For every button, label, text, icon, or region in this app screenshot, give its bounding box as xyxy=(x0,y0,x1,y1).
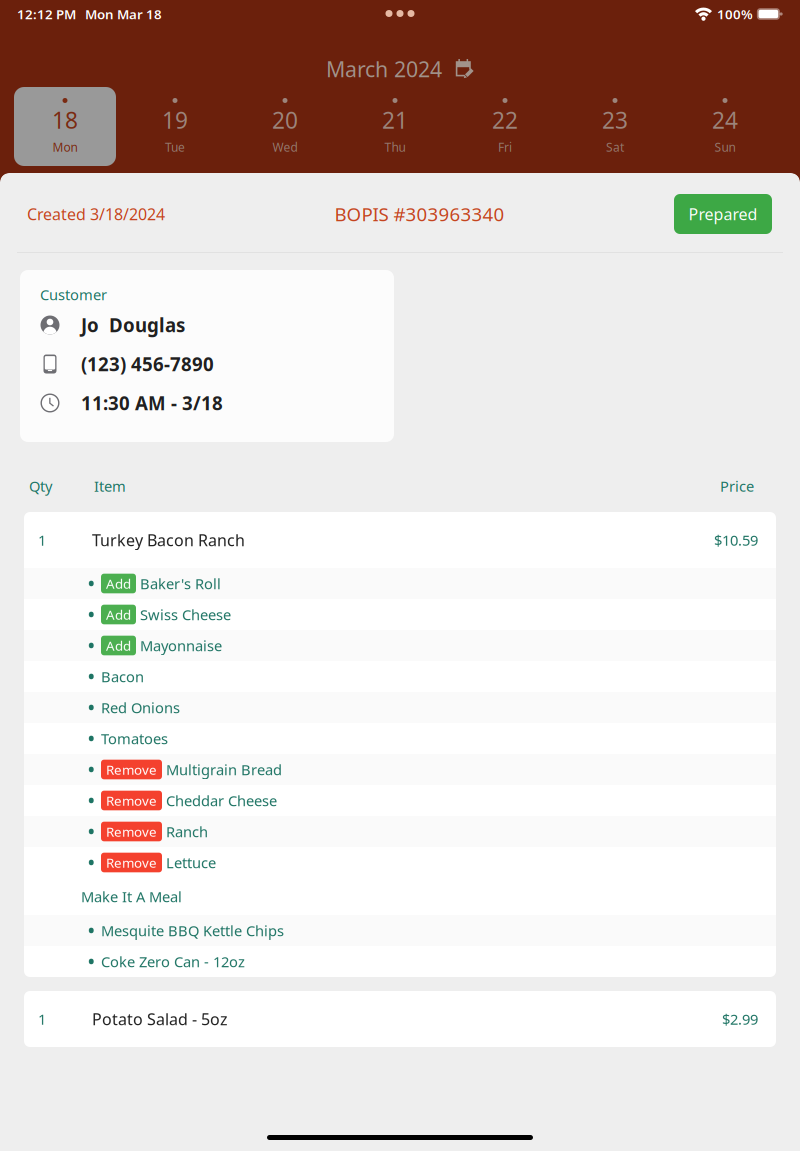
staticText: Created 3/18/2024 xyxy=(27,203,165,225)
staticText: Jo Douglas xyxy=(81,313,185,337)
staticText: 23 xyxy=(602,105,628,135)
staticText: Sat xyxy=(606,139,624,155)
staticText: 19 xyxy=(162,105,188,135)
staticText: Swiss Cheese xyxy=(140,605,231,624)
staticText: 23 xyxy=(602,105,628,135)
staticText: Item xyxy=(94,476,126,496)
button[interactable]: Prepared xyxy=(674,194,772,234)
staticText: Price xyxy=(720,476,754,496)
staticText: Mon Mar 18 xyxy=(85,5,162,23)
staticText: 24 xyxy=(712,105,738,135)
staticText: 11:30 AM - 3/18 xyxy=(81,391,223,415)
staticText: 22 xyxy=(492,105,518,135)
staticText: 1 xyxy=(38,530,46,550)
staticText: Wed xyxy=(272,139,297,155)
staticText: 1 xyxy=(38,1009,46,1029)
staticText: Remove xyxy=(106,792,157,809)
staticText: Remove xyxy=(106,761,157,778)
staticText: Add xyxy=(106,637,131,654)
staticText: Mon xyxy=(52,139,77,155)
staticText: Thu xyxy=(384,139,405,155)
staticText: Multigrain Bread xyxy=(166,760,282,779)
staticText: • xyxy=(88,634,95,657)
button[interactable]: 22 xyxy=(454,87,564,166)
button[interactable]: 20 xyxy=(234,87,344,166)
button[interactable]: 23 xyxy=(564,87,674,166)
staticText: 20 xyxy=(272,105,298,135)
staticText: March 2024 xyxy=(326,55,442,83)
staticText: 18 xyxy=(52,105,78,135)
button[interactable]: 21 xyxy=(344,87,454,166)
button[interactable]: 23 xyxy=(564,87,674,166)
button[interactable]: 19 xyxy=(124,87,234,166)
staticText: • xyxy=(88,851,95,874)
staticText: 19 xyxy=(162,105,188,135)
button[interactable]: 19 xyxy=(124,87,234,166)
staticText: 100% xyxy=(717,5,753,23)
button[interactable]: 24 xyxy=(674,87,784,166)
staticText: Red Onions xyxy=(101,698,180,717)
staticText: Coke Zero Can - 12oz xyxy=(101,952,245,971)
button[interactable]: 24 xyxy=(674,87,784,166)
staticText: Tue xyxy=(165,139,185,155)
staticText: Ranch xyxy=(166,822,208,841)
staticText: 24 xyxy=(712,105,738,135)
button[interactable]: 20 xyxy=(234,87,344,166)
staticText: Tomatoes xyxy=(101,729,168,748)
staticText: Turkey Bacon Ranch xyxy=(92,529,245,551)
staticText: Mesquite BBQ Kettle Chips xyxy=(101,921,284,940)
staticText: Tue xyxy=(165,139,185,155)
staticText: Potato Salad - 5oz xyxy=(92,1008,228,1030)
staticText: • xyxy=(88,919,95,942)
button[interactable]: March 2024 xyxy=(326,57,474,81)
staticText: Mon xyxy=(52,139,77,155)
staticText: Thu xyxy=(384,139,405,155)
staticText: Lettuce xyxy=(166,853,216,872)
staticText: Qty xyxy=(29,476,52,496)
staticText: Prepared xyxy=(688,203,757,225)
button[interactable]: 18 xyxy=(14,87,124,166)
staticText: Bacon xyxy=(101,667,144,686)
staticText: (123) 456-7890 xyxy=(81,352,214,376)
staticText: $2.99 xyxy=(722,1009,758,1029)
staticText: Make It A Meal xyxy=(81,887,182,906)
staticText: 12:12 PM xyxy=(17,5,76,23)
staticText: Wed xyxy=(272,139,297,155)
staticText: Sun xyxy=(714,139,735,155)
staticText: Baker's Roll xyxy=(140,574,221,593)
staticText: 20 xyxy=(272,105,298,135)
button[interactable]: 22 xyxy=(454,87,564,166)
staticText: $10.59 xyxy=(714,530,758,550)
staticText: • xyxy=(88,696,95,719)
staticText: • xyxy=(88,950,95,973)
staticText: 22 xyxy=(492,105,518,135)
staticText: Sun xyxy=(714,139,735,155)
staticText: Fri xyxy=(498,139,512,155)
staticText: 21 xyxy=(382,105,408,135)
staticText: • xyxy=(88,820,95,843)
button[interactable]: March 2024 xyxy=(326,57,474,81)
staticText: Mayonnaise xyxy=(140,636,222,655)
staticText: Sat xyxy=(606,139,624,155)
button[interactable]: 18 xyxy=(14,87,124,166)
staticText: March 2024 xyxy=(326,55,442,83)
staticText: Remove xyxy=(106,823,157,840)
staticText: Fri xyxy=(498,139,512,155)
staticText: Mon Mar 18 xyxy=(85,5,162,23)
staticText: • xyxy=(88,727,95,750)
staticText: 21 xyxy=(382,105,408,135)
staticText: • xyxy=(88,758,95,781)
staticText: • xyxy=(88,572,95,595)
staticText: • xyxy=(88,603,95,626)
staticText: Remove xyxy=(106,854,157,871)
staticText: Add xyxy=(106,606,131,623)
staticText: • xyxy=(88,789,95,812)
staticText: 18 xyxy=(52,105,78,135)
staticText: Add xyxy=(106,575,131,592)
staticText: 12:12 PM xyxy=(17,5,76,23)
button[interactable]: 21 xyxy=(344,87,454,166)
staticText: BOPIS #303963340 xyxy=(334,202,504,226)
staticText: 100% xyxy=(717,5,753,23)
staticText: Customer xyxy=(40,285,107,304)
staticText: • xyxy=(88,665,95,688)
